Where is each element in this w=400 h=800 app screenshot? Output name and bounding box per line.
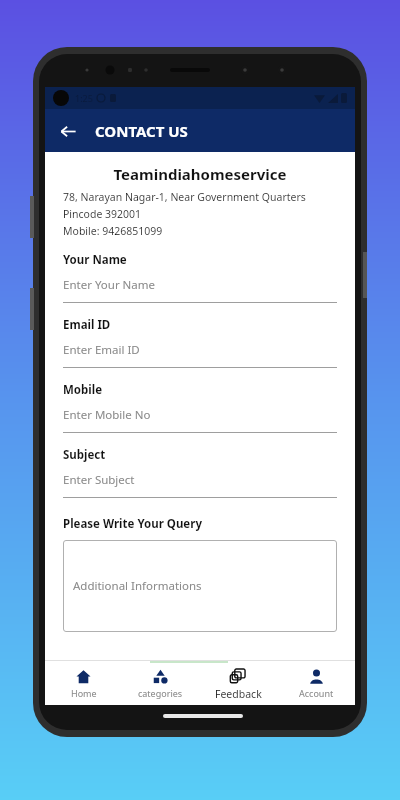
staticText: Account (299, 687, 334, 699)
staticText: Please Write Your Query (63, 516, 202, 532)
staticText: Feedback (215, 687, 262, 701)
staticText: CONTACT US (95, 121, 188, 141)
staticText: Enter Subject (63, 472, 135, 488)
button[interactable]: Home (45, 663, 122, 705)
button[interactable]: Enter Mobile No (63, 398, 337, 433)
staticText: Mobile: 9426851099 (63, 224, 163, 238)
button[interactable]: Enter Email ID (63, 333, 337, 368)
button[interactable]: Enter Your Name (63, 268, 337, 303)
staticText: Email ID (63, 317, 111, 333)
button[interactable]: categories (122, 663, 199, 705)
staticText: Pincode 392001 (63, 207, 142, 221)
staticText: Enter Mobile No (63, 407, 151, 423)
staticText: 1:25 (75, 92, 93, 104)
staticText: Home (71, 687, 97, 699)
staticText: Enter Your Name (63, 277, 156, 293)
button[interactable]: Feedback (199, 663, 277, 705)
staticText: Additional Informations (73, 578, 202, 594)
button[interactable]: Back (53, 116, 83, 146)
staticText: Subject (63, 447, 106, 463)
staticText: categories (138, 687, 183, 699)
staticText: 78, Narayan Nagar-1, Near Government Qua… (63, 190, 306, 204)
button[interactable]: Account (277, 663, 355, 705)
staticText: Enter Email ID (63, 342, 140, 358)
button[interactable]: Additional Informations (63, 540, 337, 632)
staticText: Mobile (63, 382, 103, 398)
staticText: Your Name (63, 252, 127, 268)
button[interactable]: Enter Subject (63, 463, 337, 498)
staticText: Teamindiahomeservice (63, 164, 337, 184)
